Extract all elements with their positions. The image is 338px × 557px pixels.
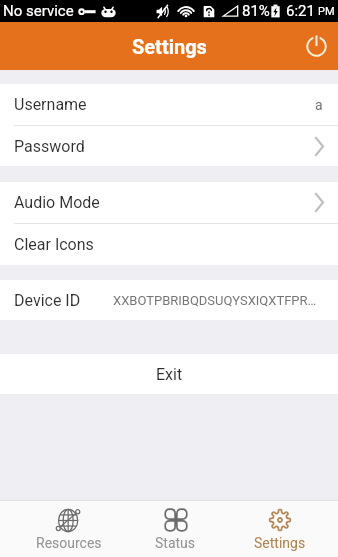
staticText: Exit: [156, 365, 183, 384]
staticText: Settings: [132, 35, 207, 58]
button[interactable]: Status: [121, 501, 230, 557]
button[interactable]: Clear Icons: [0, 224, 338, 265]
staticText: Resources: [36, 535, 102, 551]
button[interactable]: Username: [0, 84, 338, 125]
button[interactable]: Device ID: [0, 280, 338, 320]
button[interactable]: Settings: [230, 501, 330, 557]
staticText: 81%: [242, 2, 270, 20]
button[interactable]: Resources: [16, 501, 121, 557]
button[interactable]: Password: [0, 126, 338, 166]
button[interactable]: Exit: [0, 354, 338, 394]
staticText: Username: [14, 95, 87, 114]
staticText: Device ID: [14, 291, 81, 310]
staticText: Audio Mode: [14, 193, 100, 212]
staticText: Settings: [254, 535, 306, 551]
staticText: Status: [155, 535, 196, 551]
staticText: XXBOTPBRIBQDSUQYSXIQXTFPR…: [113, 293, 317, 308]
staticText: Password: [14, 137, 85, 156]
staticText: PM: [318, 5, 335, 18]
staticText: No service: [3, 2, 74, 20]
staticText: a: [315, 97, 323, 113]
button[interactable]: Power: [304, 34, 328, 58]
staticText: Clear Icons: [14, 235, 94, 254]
staticText: 6:21: [286, 2, 315, 20]
button[interactable]: Audio Mode: [0, 182, 338, 223]
